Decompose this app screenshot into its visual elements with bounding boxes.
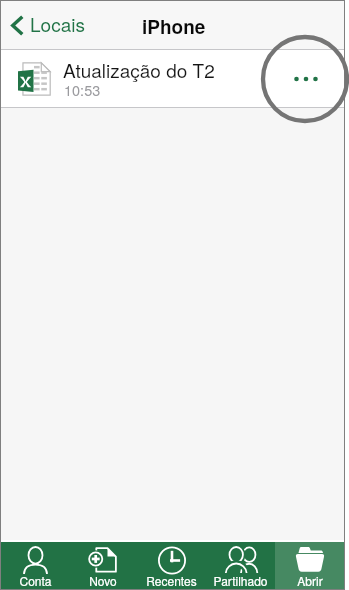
button[interactable]: More options <box>277 50 335 108</box>
staticText: Atualização do T2 <box>63 56 215 83</box>
staticText: iPhone <box>142 13 206 40</box>
button[interactable]: Partilhado <box>206 542 275 589</box>
staticText: Partilhado <box>213 572 268 589</box>
button[interactable]: Abrir <box>275 542 344 589</box>
button[interactable]: Recentes <box>137 542 206 589</box>
staticText: Novo <box>89 572 117 589</box>
button[interactable]: Conta <box>1 542 69 589</box>
staticText: Conta <box>19 572 52 589</box>
button[interactable]: Novo <box>69 542 137 589</box>
button[interactable]: Atualização do T2 <box>1 50 344 108</box>
button[interactable]: Locais <box>1 1 101 50</box>
staticText: Locais <box>30 10 85 37</box>
staticText: Recentes <box>146 572 197 589</box>
staticText: Abrir <box>297 572 323 589</box>
staticText: 10:53 <box>64 79 101 100</box>
